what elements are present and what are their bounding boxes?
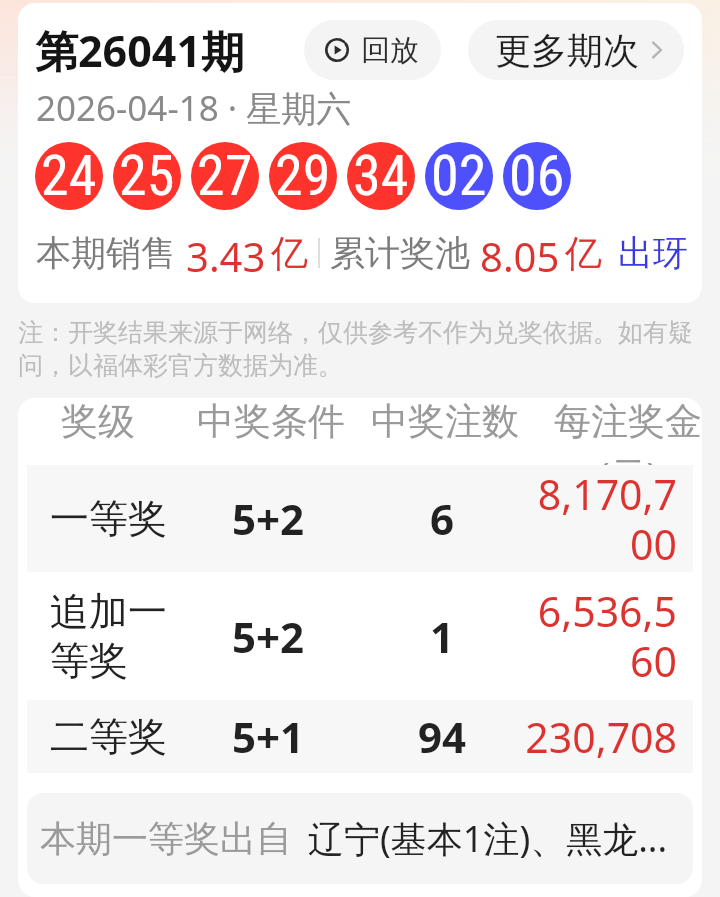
staticText: 25: [119, 143, 175, 209]
staticText: 02: [431, 143, 487, 209]
staticText: 8,170,700: [519, 466, 677, 572]
button[interactable]: Replay: [304, 20, 441, 80]
staticText: 06: [509, 143, 565, 209]
button[interactable]: 出玡: [618, 231, 688, 275]
staticText: 第26041期: [35, 21, 244, 80]
staticText: 二等奖: [50, 712, 167, 761]
staticText: 本期销售: [36, 231, 176, 275]
staticText: 亿: [271, 230, 308, 277]
button[interactable]: 更多期次: [468, 20, 684, 80]
staticText: 29: [275, 143, 331, 209]
button[interactable]: 本期一等奖出自: [27, 793, 693, 884]
staticText: 6,536,560: [519, 583, 677, 689]
staticText: 8.05: [480, 229, 560, 277]
button[interactable]: 一等奖: [27, 465, 693, 572]
staticText: 1: [430, 608, 455, 665]
staticText: 累计奖池: [330, 231, 470, 275]
button[interactable]: 追加一等奖: [27, 572, 693, 700]
staticText: 亿: [565, 230, 602, 277]
staticText: 辽宁(基本1注)、黑龙...: [308, 814, 668, 863]
staticText: 追加一等奖: [50, 587, 172, 686]
staticText: 230,708: [519, 709, 677, 765]
button[interactable]: 二等奖: [27, 700, 693, 773]
staticText: 3.43: [186, 229, 266, 277]
staticText: 奖级: [61, 398, 135, 445]
staticText: 2026-04-18 · 星期六: [36, 84, 352, 132]
staticText: 回放: [361, 32, 419, 69]
staticText: 中奖条件: [197, 398, 345, 445]
staticText: 5+2: [232, 608, 305, 665]
staticText: 注：开奖结果来源于网络，仅供参考不作为兑奖依据。如有疑问，以福体彩官方数据为准。: [18, 317, 704, 381]
staticText: 每注奖金(元): [553, 398, 702, 465]
staticText: 34: [353, 143, 409, 209]
staticText: 24: [41, 143, 97, 209]
staticText: 本期一等奖出自: [40, 816, 292, 861]
staticText: 5+2: [232, 490, 305, 547]
other: Replay: [325, 38, 349, 62]
staticText: 5+1: [232, 708, 305, 765]
staticText: 94: [418, 708, 467, 765]
staticText: 6: [430, 490, 455, 547]
staticText: 一等奖: [50, 494, 167, 543]
staticText: 更多期次: [495, 28, 639, 73]
staticText: 中奖注数: [371, 398, 519, 445]
staticText: 27: [197, 143, 253, 209]
